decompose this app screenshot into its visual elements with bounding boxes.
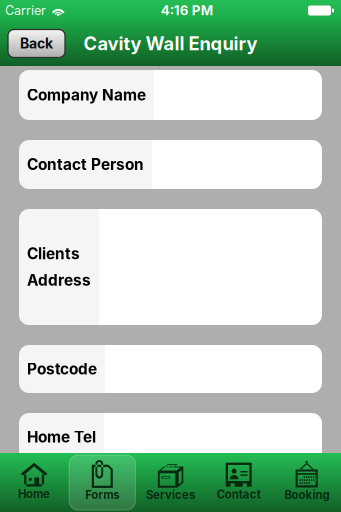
button[interactable]: Contact <box>205 453 273 512</box>
staticText: Back <box>20 35 53 52</box>
staticText: Services <box>146 488 195 502</box>
button[interactable]: Forms <box>68 453 136 512</box>
button[interactable]: Booking <box>273 453 341 512</box>
button[interactable]: Back <box>0 29 65 57</box>
staticText: Forms <box>85 488 119 502</box>
staticText: Home <box>18 487 50 501</box>
staticText: Address <box>27 271 91 290</box>
button[interactable]: Home <box>0 453 68 512</box>
staticText: Contact <box>217 488 261 501</box>
staticText: Mobile Tel <box>27 496 103 512</box>
staticText: Carrier <box>5 3 46 18</box>
staticText: Booking <box>284 488 329 502</box>
button[interactable]: Services <box>136 453 205 512</box>
staticText: 4:16 PM <box>161 2 213 18</box>
staticText: Contact Person <box>27 155 144 174</box>
staticText: Clients <box>27 244 80 263</box>
staticText: Company Name <box>27 86 146 104</box>
staticText: Home Tel <box>27 428 96 446</box>
staticText: Postcode <box>27 360 97 378</box>
staticText: Cavity Wall Enquiry <box>83 32 257 55</box>
